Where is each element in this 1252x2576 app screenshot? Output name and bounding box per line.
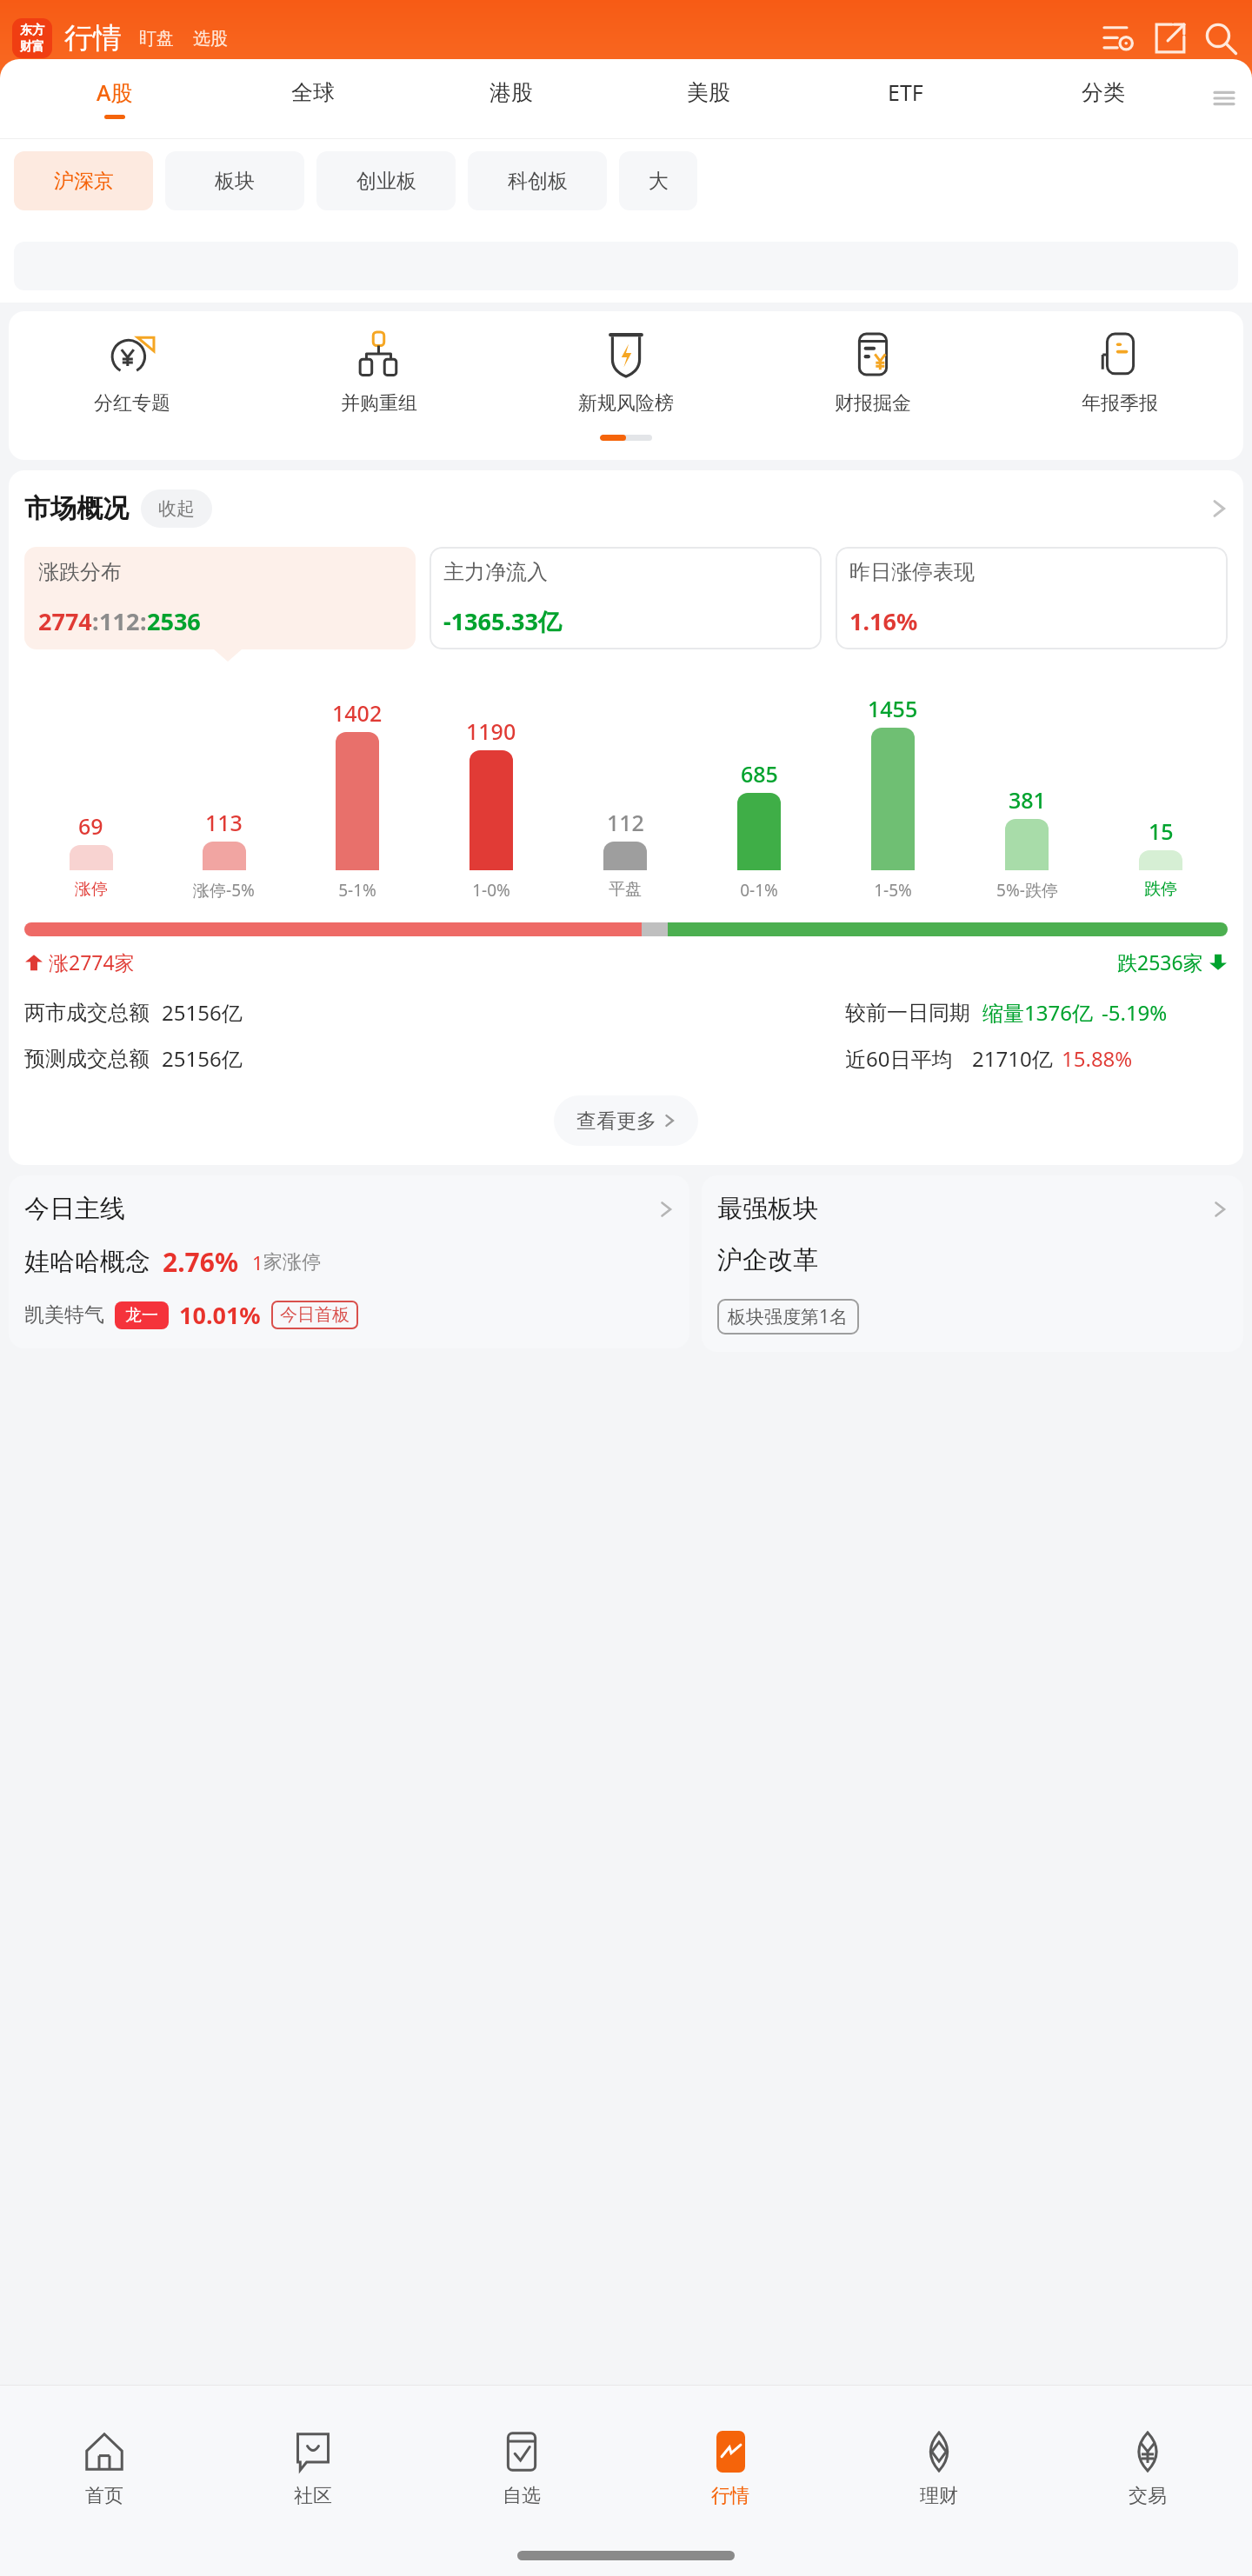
button[interactable]: 科创板	[468, 151, 607, 210]
staticText: 社区	[294, 2484, 332, 2508]
staticText: 今日首板	[280, 1304, 350, 1326]
staticText: 1455	[868, 694, 918, 723]
staticText: 昨日涨停表现	[849, 559, 975, 585]
staticText: 大	[649, 169, 669, 194]
button[interactable]: 涨跌分布	[24, 547, 416, 649]
staticText: 涨停-5%	[193, 879, 255, 902]
button[interactable]: 全球	[214, 59, 412, 137]
staticText: 沪深京	[54, 169, 114, 194]
button[interactable]: 收起	[158, 489, 195, 528]
button[interactable]: 首页	[0, 2386, 209, 2551]
staticText: 69	[78, 811, 103, 841]
button[interactable]: 并购重组	[256, 330, 503, 416]
staticText: 港股	[489, 79, 533, 106]
button[interactable]: Search	[1202, 19, 1240, 57]
staticText: 25156亿	[162, 1044, 243, 1073]
staticText: 112	[99, 605, 140, 637]
staticText: 沪企改革	[717, 1244, 818, 1276]
staticText: 15	[1149, 816, 1174, 846]
button[interactable]: 财报掘金	[749, 330, 996, 416]
staticText: 较前一日同期	[845, 1000, 970, 1026]
staticText: 1.16%	[849, 605, 918, 637]
button[interactable]: 分类	[1004, 59, 1202, 137]
staticText: 1190	[466, 716, 516, 746]
staticText: 创业板	[356, 169, 416, 194]
staticText: 理财	[920, 2484, 958, 2508]
staticText: 查看更多	[576, 1108, 656, 1134]
staticText: 25156亿	[162, 998, 243, 1027]
button[interactable]: 东方财富	[12, 18, 52, 58]
staticText: 板块	[215, 169, 255, 194]
button[interactable]: 自选	[417, 2386, 626, 2551]
staticText: 381	[1009, 785, 1046, 815]
button[interactable]: 行情	[626, 2386, 835, 2551]
button[interactable]: More tabs	[1202, 59, 1247, 137]
button[interactable]: 港股	[412, 59, 609, 137]
button[interactable]: A股	[16, 59, 214, 137]
staticText: 家涨停	[263, 1250, 321, 1275]
button[interactable]: Settings list	[1101, 19, 1139, 57]
staticText: 龙一	[125, 1305, 158, 1326]
button[interactable]: 分红专题	[9, 330, 256, 416]
staticText: 市场概况	[24, 492, 129, 525]
staticText: 两市成交总额	[24, 1000, 150, 1026]
button[interactable]: 盯盘	[136, 24, 177, 53]
staticText: 平盘	[609, 879, 642, 900]
button[interactable]: 今日主线	[9, 1175, 689, 1348]
staticText: 科创板	[508, 169, 568, 194]
staticText: 新规风险榜	[578, 391, 674, 416]
staticText: 1	[252, 1249, 263, 1275]
button[interactable]: 板块	[165, 151, 304, 210]
button[interactable]: 理财	[835, 2386, 1043, 2551]
button[interactable]: 新规风险榜	[503, 330, 749, 416]
button[interactable]: 社区	[209, 2386, 417, 2551]
button[interactable]: 交易	[1043, 2386, 1252, 2551]
staticText: 美股	[687, 79, 730, 106]
staticText: 自选	[503, 2484, 541, 2508]
button[interactable]: 创业板	[316, 151, 456, 210]
staticText: 分红专题	[94, 391, 170, 416]
staticText: 2.76%	[163, 1244, 238, 1280]
button[interactable]: ETF	[807, 59, 1004, 137]
staticText: 板块强度第1名	[728, 1304, 849, 1329]
staticText: 涨2774家	[49, 949, 135, 975]
button[interactable]: Share	[1151, 19, 1189, 57]
staticText: :	[92, 605, 99, 637]
staticText: 娃哈哈概念	[24, 1246, 150, 1278]
button[interactable]: 年报季报	[996, 330, 1243, 416]
staticText: 跌2536家	[1117, 949, 1203, 975]
button[interactable]: 大	[619, 151, 697, 210]
staticText: 最强板块	[717, 1193, 818, 1225]
button[interactable]: 沪深京	[14, 151, 153, 210]
button[interactable]: 最强板块	[702, 1175, 1243, 1352]
staticText: -5.19%	[1102, 998, 1168, 1027]
button[interactable]: 主力净流入	[430, 547, 822, 649]
staticText: 1-5%	[874, 879, 912, 902]
staticText: 并购重组	[341, 391, 417, 416]
staticText: 113	[205, 808, 243, 837]
staticText: 年报季报	[1082, 391, 1158, 416]
button[interactable]: 昨日涨停表现	[836, 547, 1228, 649]
staticText: 21710亿	[972, 1044, 1053, 1073]
button[interactable]: 美股	[609, 59, 807, 137]
staticText: 0-1%	[740, 879, 778, 902]
button[interactable]: 市场概况	[24, 489, 1228, 528]
staticText: 5-1%	[338, 879, 376, 902]
staticText: 预测成交总额	[24, 1046, 150, 1072]
staticText: 选股	[193, 28, 228, 50]
staticText: 15.88%	[1062, 1044, 1133, 1073]
staticText: 跌停	[1144, 879, 1177, 900]
staticText: ETF	[888, 77, 923, 107]
staticText: 2774	[38, 605, 92, 637]
staticText: 主力净流入	[443, 559, 548, 585]
button[interactable]: 查看更多	[554, 1095, 698, 1146]
staticText: -1365.33亿	[443, 605, 562, 637]
staticText: 685	[741, 759, 778, 789]
staticText: 盯盘	[139, 28, 174, 50]
staticText: :	[140, 605, 147, 637]
staticText: 收起	[158, 497, 195, 520]
button[interactable]: 选股	[190, 24, 231, 53]
staticText: 1402	[332, 698, 383, 728]
staticText: 凯美特气	[24, 1302, 104, 1328]
staticText: 涨停	[75, 879, 108, 900]
